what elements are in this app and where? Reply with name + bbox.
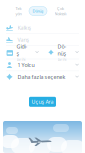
staticText: tarihi bbox=[57, 56, 66, 62]
staticText: Uçuş Ara bbox=[31, 98, 53, 105]
button[interactable]: 1 Yolcu bbox=[0, 59, 85, 71]
button[interactable]: Uçuş Ara bbox=[29, 97, 56, 107]
staticText: tarihi bbox=[16, 56, 25, 62]
button[interactable]: Gidiş bbox=[6, 43, 39, 62]
button[interactable]: Çok bbox=[51, 4, 70, 18]
staticText: Çok bbox=[57, 6, 64, 11]
staticText: Dönüş bbox=[32, 8, 43, 14]
staticText: Tek bbox=[15, 6, 21, 11]
button[interactable]: Dönüş bbox=[29, 6, 47, 15]
staticText: Varış bbox=[17, 36, 29, 43]
staticText: yön bbox=[15, 11, 21, 16]
staticText: Dönüş bbox=[57, 43, 66, 57]
button[interactable]: Kalkış bbox=[0, 22, 85, 33]
button[interactable]: Dönüş bbox=[48, 43, 79, 62]
staticText: Daha fazla seçenek bbox=[17, 73, 65, 80]
staticText: Gidiş bbox=[16, 43, 27, 57]
button[interactable]: Daha fazla seçenek bbox=[0, 71, 85, 83]
button[interactable]: Tek bbox=[12, 4, 25, 18]
staticText: Noktalı bbox=[54, 11, 66, 16]
staticText: 1 Yolcu bbox=[17, 61, 34, 68]
staticText: Kalkış bbox=[17, 24, 31, 31]
button[interactable]: Varış bbox=[0, 34, 85, 45]
